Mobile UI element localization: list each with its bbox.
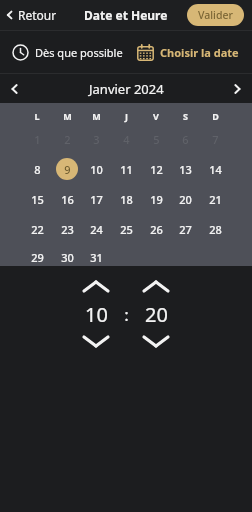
button[interactable]: 22 bbox=[26, 218, 48, 240]
staticText: 20 bbox=[145, 301, 168, 328]
button[interactable]: Dès que possible bbox=[10, 38, 125, 67]
staticText: 13 bbox=[179, 162, 192, 177]
button[interactable]: 24 bbox=[85, 218, 107, 240]
staticText: 25 bbox=[120, 222, 133, 237]
staticText: 11 bbox=[120, 162, 133, 177]
staticText: 30 bbox=[61, 250, 74, 265]
button[interactable]: 14 bbox=[204, 158, 226, 180]
button[interactable]: 31 bbox=[85, 248, 107, 266]
staticText: 20 bbox=[179, 192, 192, 207]
button[interactable]: 8 bbox=[26, 158, 48, 180]
staticText: Date et Heure bbox=[84, 7, 168, 23]
staticText: L bbox=[34, 110, 40, 122]
button[interactable]: 10 bbox=[85, 158, 107, 180]
button[interactable]: Mois précédent bbox=[0, 78, 30, 100]
button[interactable]: 28 bbox=[204, 218, 226, 240]
staticText: 9 bbox=[64, 162, 71, 177]
button[interactable]: 13 bbox=[174, 158, 196, 180]
staticText: 14 bbox=[209, 162, 222, 177]
button[interactable]: Retour bbox=[0, 3, 65, 27]
staticText: 2 bbox=[64, 132, 71, 147]
staticText: Retour bbox=[18, 7, 57, 23]
staticText: 24 bbox=[90, 222, 103, 237]
button[interactable]: 26 bbox=[145, 218, 167, 240]
staticText: 22 bbox=[31, 222, 44, 237]
staticText: 23 bbox=[61, 222, 74, 237]
staticText: M bbox=[92, 110, 101, 122]
staticText: Valider bbox=[198, 8, 233, 22]
staticText: 26 bbox=[150, 222, 163, 237]
staticText: 6 bbox=[182, 132, 189, 147]
button[interactable]: 16 bbox=[56, 188, 78, 210]
staticText: 3 bbox=[93, 132, 100, 147]
staticText: D bbox=[212, 110, 219, 122]
staticText: M bbox=[63, 110, 72, 122]
button[interactable]: 12 bbox=[145, 158, 167, 180]
staticText: Dès que possible bbox=[35, 45, 123, 60]
button[interactable]: 19 bbox=[145, 188, 167, 210]
staticText: V bbox=[153, 110, 159, 122]
button[interactable]: Valider bbox=[187, 4, 244, 26]
staticText: 15 bbox=[31, 192, 44, 207]
button[interactable]: 17 bbox=[85, 188, 107, 210]
staticText: 4 bbox=[123, 132, 130, 147]
staticText: 8 bbox=[34, 162, 41, 177]
staticText: S bbox=[183, 110, 188, 122]
staticText: 21 bbox=[209, 192, 222, 207]
button[interactable]: 11 bbox=[115, 158, 137, 180]
button[interactable]: Augmenter les minutes bbox=[134, 281, 178, 292]
staticText: Choisir la date bbox=[160, 45, 239, 60]
staticText: 28 bbox=[209, 222, 222, 237]
staticText: : bbox=[124, 303, 129, 326]
button[interactable]: 9 bbox=[56, 158, 78, 180]
staticText: 10 bbox=[85, 301, 108, 328]
button[interactable]: 21 bbox=[204, 188, 226, 210]
staticText: 17 bbox=[90, 192, 103, 207]
staticText: 31 bbox=[90, 250, 103, 265]
staticText: 12 bbox=[150, 162, 163, 177]
button[interactable]: Diminuer les heures bbox=[74, 336, 118, 347]
staticText: J bbox=[125, 110, 128, 122]
button[interactable]: 15 bbox=[26, 188, 48, 210]
button[interactable]: 23 bbox=[56, 218, 78, 240]
button[interactable]: 30 bbox=[56, 248, 78, 266]
button[interactable]: Choisir la date bbox=[135, 38, 241, 67]
button[interactable]: 27 bbox=[174, 218, 196, 240]
button[interactable]: Diminuer les minutes bbox=[134, 336, 178, 347]
staticText: 18 bbox=[120, 192, 133, 207]
button[interactable]: 29 bbox=[26, 248, 48, 266]
staticText: 10 bbox=[90, 162, 103, 177]
staticText: 19 bbox=[150, 192, 163, 207]
button[interactable]: 20 bbox=[174, 188, 196, 210]
staticText: 7 bbox=[212, 132, 219, 147]
button[interactable]: 18 bbox=[115, 188, 137, 210]
staticText: Janvier 2024 bbox=[89, 80, 164, 98]
staticText: 27 bbox=[179, 222, 192, 237]
button[interactable]: Mois suivant bbox=[222, 78, 252, 100]
staticText: 16 bbox=[61, 192, 74, 207]
staticText: 29 bbox=[31, 250, 44, 265]
button[interactable]: Augmenter les heures bbox=[74, 281, 118, 292]
staticText: 5 bbox=[153, 132, 160, 147]
staticText: 1 bbox=[34, 132, 41, 147]
button[interactable]: 25 bbox=[115, 218, 137, 240]
